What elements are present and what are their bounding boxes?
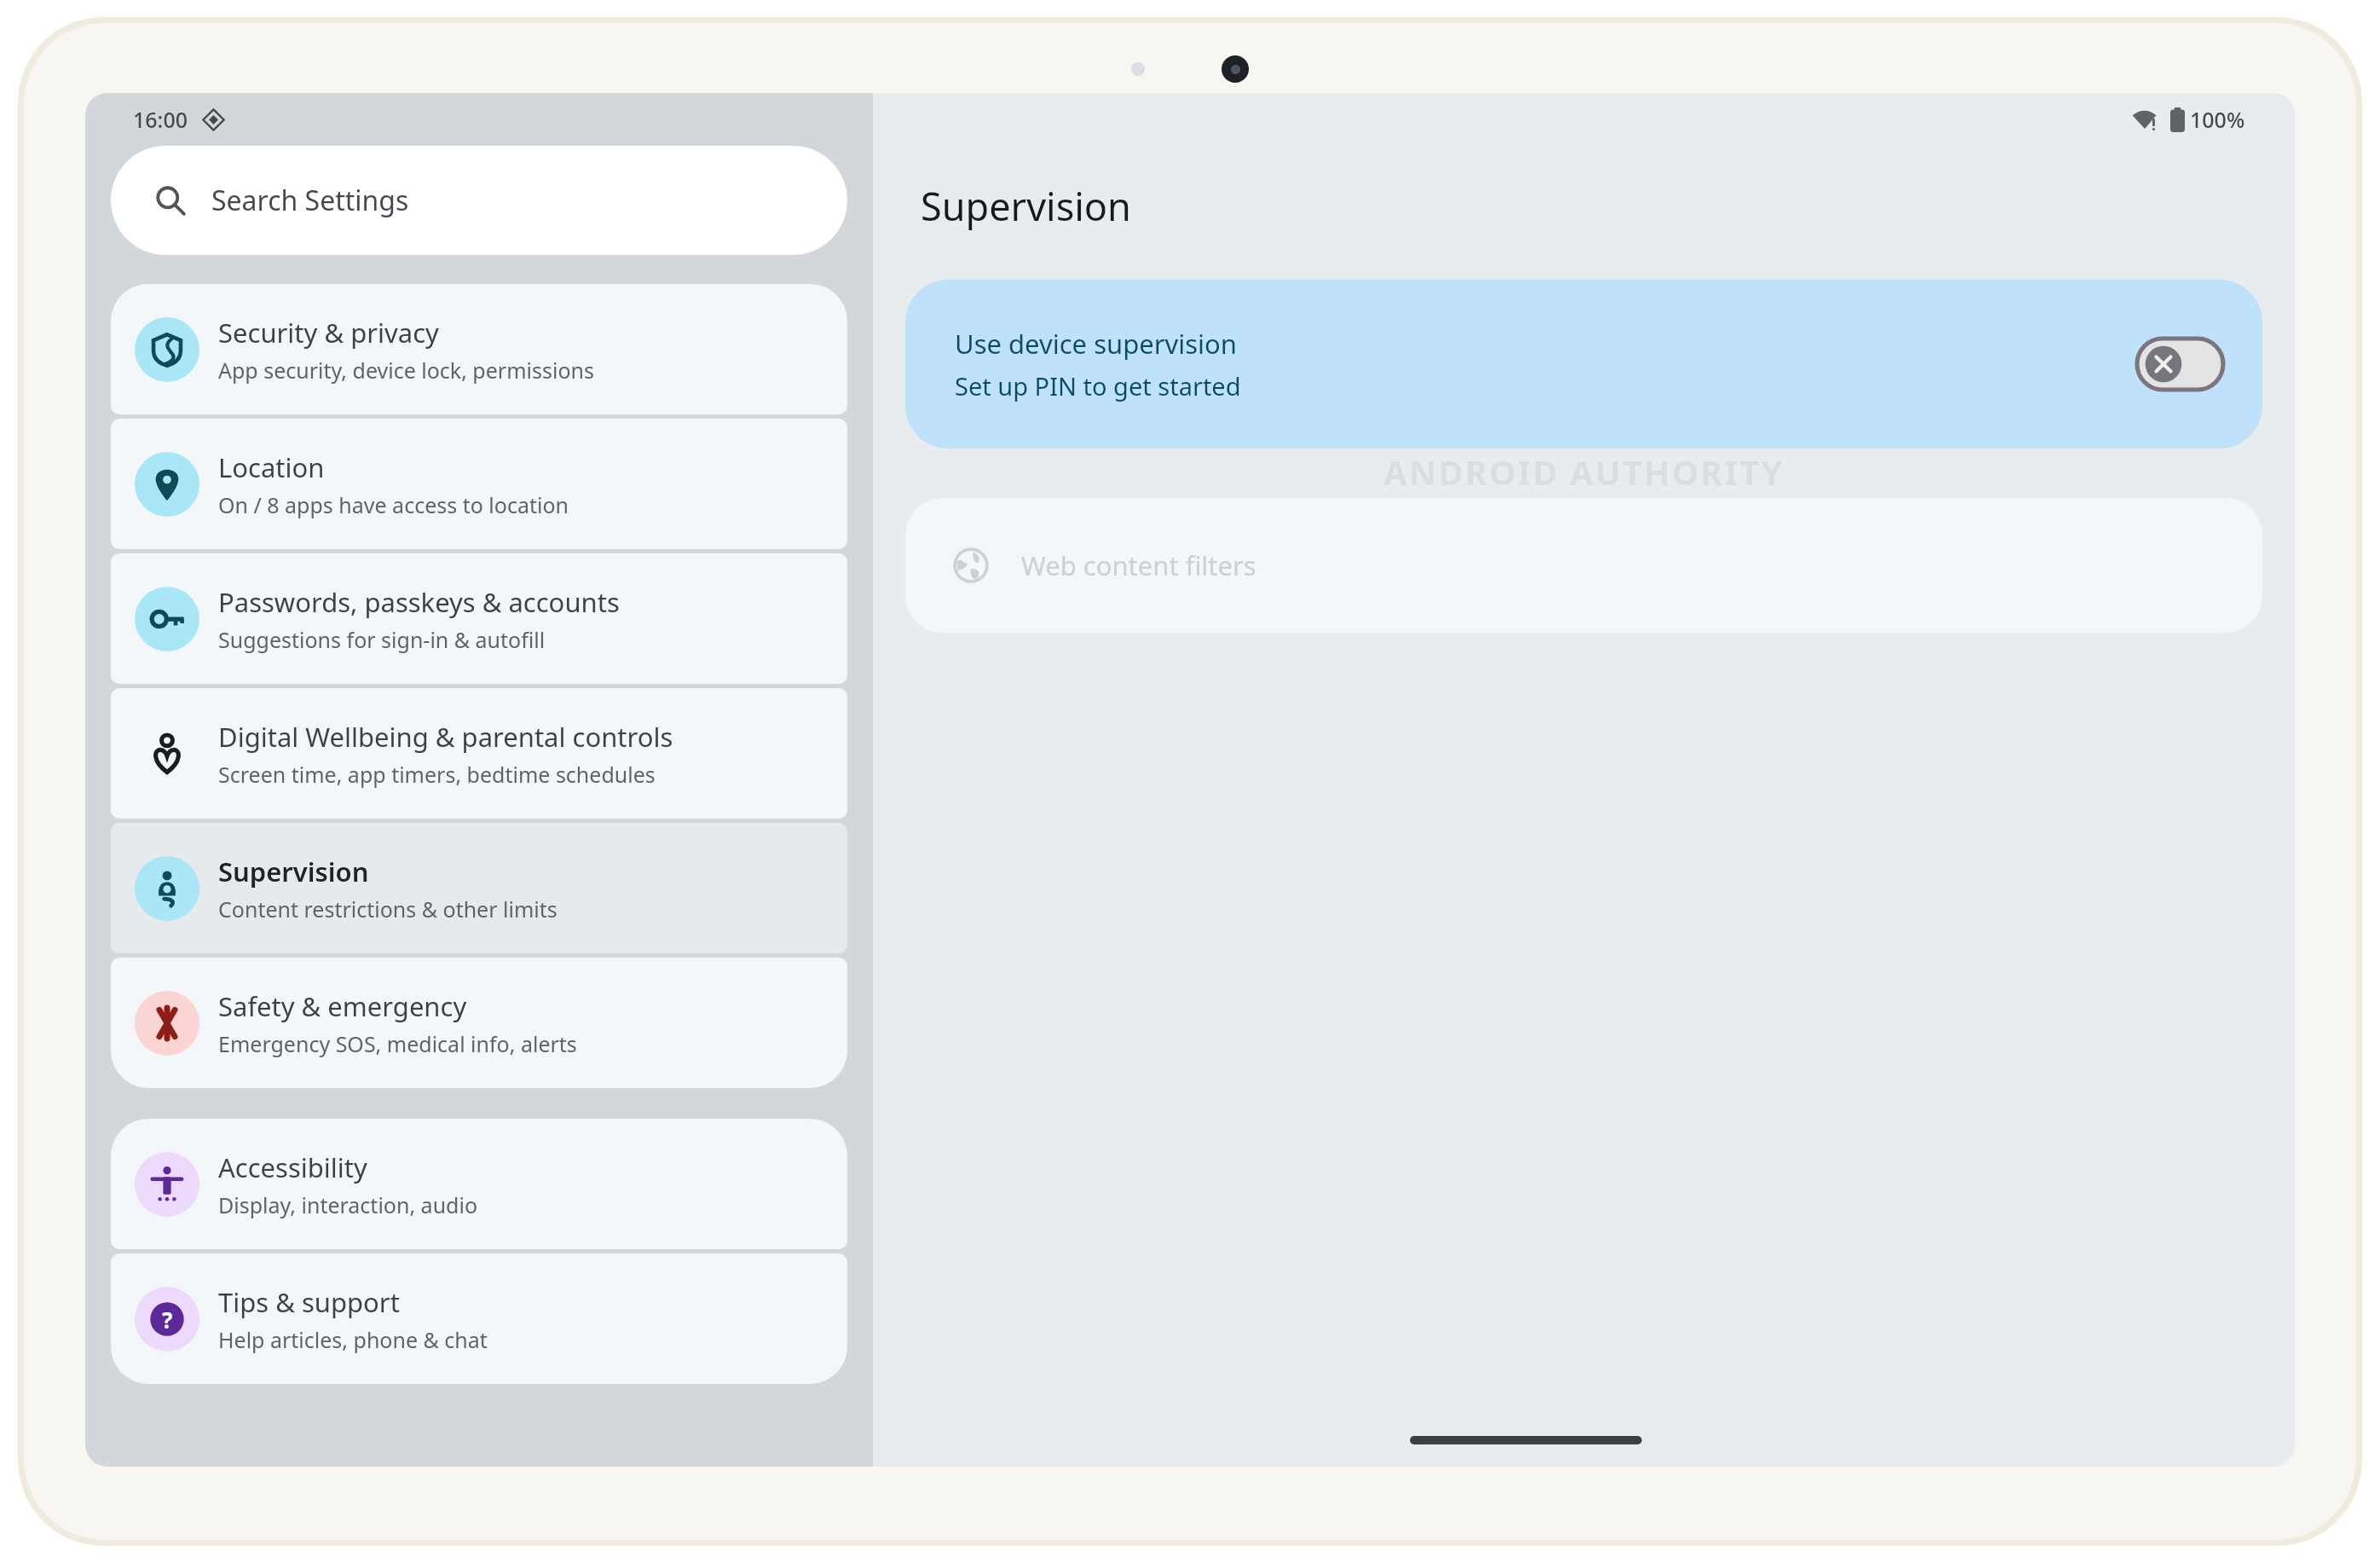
staticText: Accessibility bbox=[218, 1149, 367, 1185]
staticText: Supervision bbox=[921, 180, 1131, 232]
staticText: Security & privacy bbox=[218, 315, 439, 350]
staticText: Emergency SOS, medical info, alerts bbox=[218, 1029, 577, 1058]
button[interactable]: Web content filters bbox=[905, 498, 2262, 633]
staticText: 16:00 bbox=[133, 105, 188, 134]
staticText: Safety & emergency bbox=[218, 988, 467, 1024]
button[interactable]: Safety & emergency bbox=[111, 958, 847, 1088]
staticText: Passwords, passkeys & accounts bbox=[218, 584, 620, 620]
button[interactable]: Search Settings bbox=[111, 146, 847, 255]
staticText: Content restrictions & other limits bbox=[218, 894, 557, 923]
staticText: Set up PIN to get started bbox=[955, 369, 1241, 402]
staticText: Suggestions for sign-in & autofill bbox=[218, 625, 546, 654]
staticText: App security, device lock, permissions bbox=[218, 356, 594, 385]
staticText: ? bbox=[162, 1305, 173, 1334]
staticText: Screen time, app timers, bedtime schedul… bbox=[218, 760, 656, 789]
staticText: 100% bbox=[2190, 105, 2245, 134]
button[interactable]: Use device supervision bbox=[905, 280, 2262, 449]
staticText: ANDROID AUTHORITY bbox=[1384, 449, 1784, 493]
staticText: Use device supervision bbox=[955, 326, 1238, 362]
staticText: Supervision bbox=[218, 854, 369, 889]
staticText: Location bbox=[218, 449, 325, 485]
button[interactable]: Use device supervision, off bbox=[2137, 339, 2223, 390]
staticText: Web content filters bbox=[1021, 547, 1256, 583]
button[interactable]: Accessibility bbox=[111, 1119, 847, 1249]
staticText: Help articles, phone & chat bbox=[218, 1325, 488, 1354]
staticText: Search Settings bbox=[211, 182, 409, 219]
button[interactable]: Digital Wellbeing & parental controls bbox=[111, 688, 847, 819]
staticText: Digital Wellbeing & parental controls bbox=[218, 719, 673, 755]
staticText: Display, interaction, audio bbox=[218, 1190, 478, 1219]
button[interactable]: Supervision bbox=[111, 823, 847, 953]
button[interactable]: Location bbox=[111, 419, 847, 549]
staticText: Tips & support bbox=[218, 1284, 400, 1320]
staticText: On / 8 apps have access to location bbox=[218, 490, 569, 519]
button[interactable]: ? bbox=[111, 1253, 847, 1384]
button[interactable]: Passwords, passkeys & accounts bbox=[111, 553, 847, 684]
button[interactable]: Security & privacy bbox=[111, 284, 847, 414]
